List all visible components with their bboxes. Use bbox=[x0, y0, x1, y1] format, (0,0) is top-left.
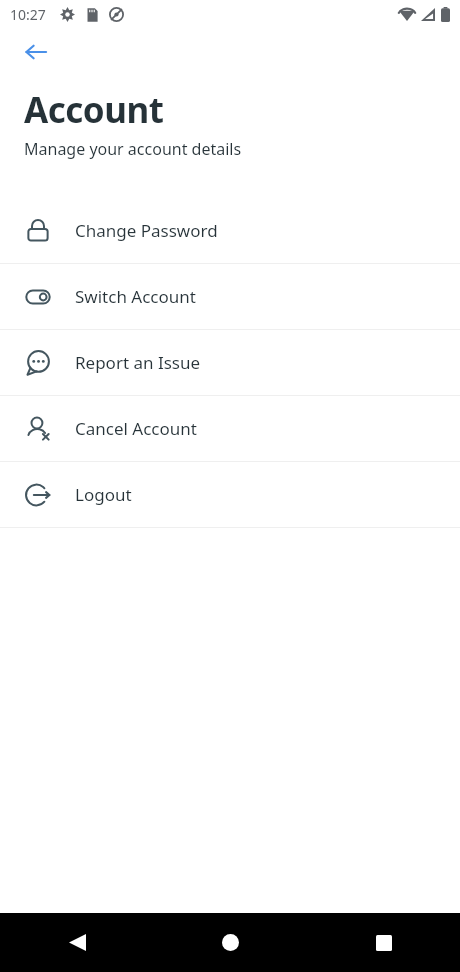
staticText: Manage your account details bbox=[24, 138, 242, 160]
staticText: Cancel Account bbox=[75, 417, 197, 440]
button[interactable]: Change Password bbox=[0, 198, 460, 263]
staticText: 10:27 bbox=[10, 5, 46, 24]
staticText: Account bbox=[24, 86, 164, 134]
button[interactable]: Switch Account bbox=[0, 264, 460, 329]
staticText: Switch Account bbox=[75, 285, 196, 308]
button[interactable]: Back bbox=[16, 32, 56, 72]
staticText: Change Password bbox=[75, 219, 218, 242]
staticText: Report an Issue bbox=[75, 351, 201, 374]
staticText: Logout bbox=[75, 483, 132, 506]
button[interactable]: Logout bbox=[0, 462, 460, 527]
button[interactable]: Cancel Account bbox=[0, 396, 460, 461]
button[interactable]: Back bbox=[0, 913, 154, 972]
button[interactable]: Recent apps bbox=[307, 913, 460, 972]
button[interactable]: Home bbox=[154, 913, 307, 972]
button[interactable]: Report an Issue bbox=[0, 330, 460, 395]
